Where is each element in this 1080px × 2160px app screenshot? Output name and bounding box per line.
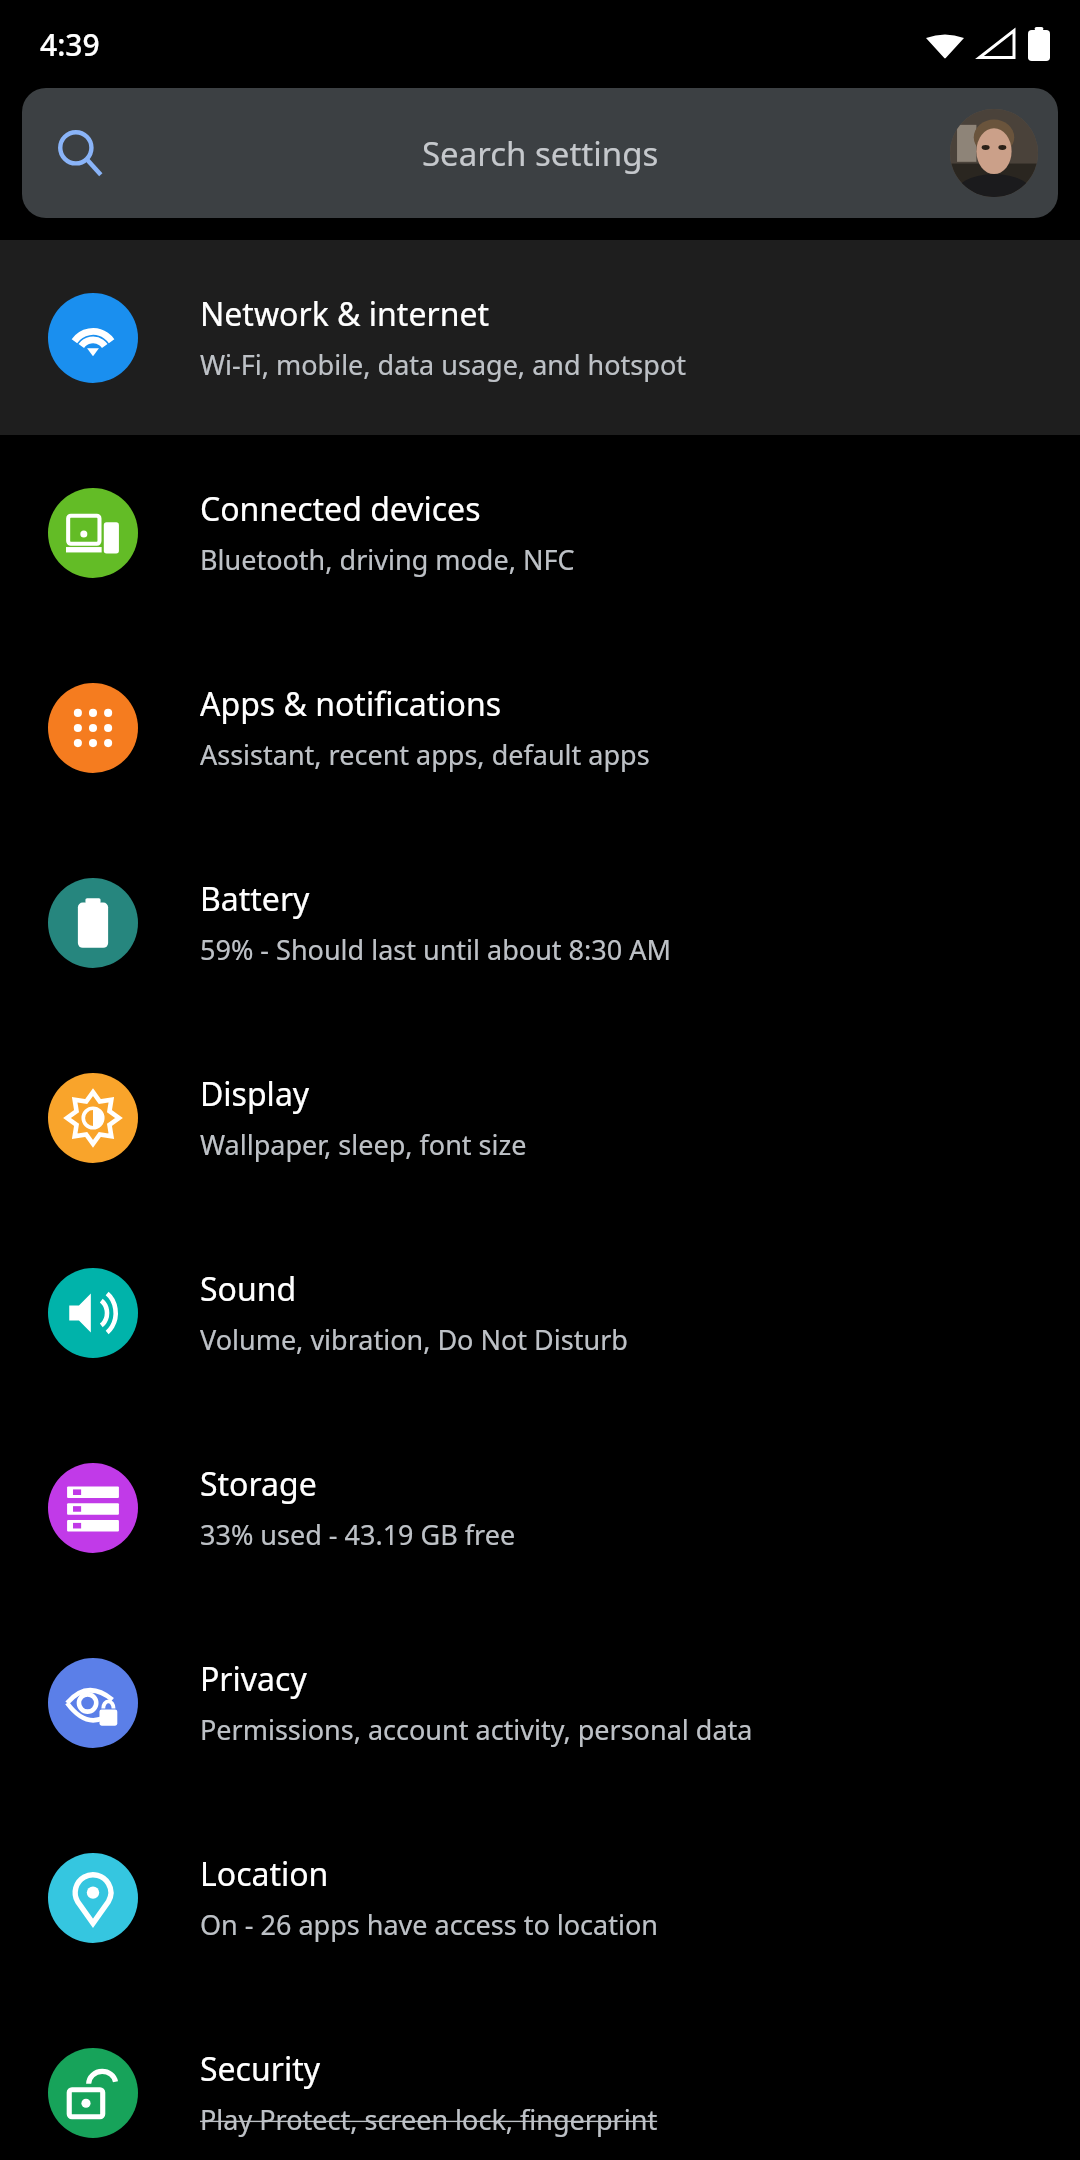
staticText: Volume, vibration, Do Not Disturb bbox=[200, 1321, 628, 1358]
staticText: Sound bbox=[200, 1267, 297, 1311]
staticText: Apps & notifications bbox=[200, 682, 501, 726]
staticText: Network & internet bbox=[200, 292, 490, 336]
staticText: 33% used - 43.19 GB free bbox=[200, 1516, 516, 1553]
button[interactable]: Display bbox=[0, 1020, 1080, 1215]
staticText: Security bbox=[200, 2047, 321, 2091]
staticText: Bluetooth, driving mode, NFC bbox=[200, 541, 575, 578]
staticText: Storage bbox=[200, 1462, 317, 1506]
button[interactable]: Sound bbox=[0, 1215, 1080, 1410]
button[interactable]: Security bbox=[0, 1995, 1080, 2160]
staticText: Connected devices bbox=[200, 487, 481, 531]
staticText: Display bbox=[200, 1072, 310, 1116]
staticText: Privacy bbox=[200, 1657, 307, 1701]
button[interactable]: Search bbox=[22, 88, 1058, 218]
button[interactable]: Storage bbox=[0, 1410, 1080, 1605]
staticText: Location bbox=[200, 1852, 329, 1896]
staticText: Battery bbox=[200, 877, 310, 921]
button[interactable]: Battery bbox=[0, 825, 1080, 1020]
staticText: Wi-Fi, mobile, data usage, and hotspot bbox=[200, 346, 686, 383]
staticText: 4:39 bbox=[40, 24, 100, 65]
button[interactable]: Privacy bbox=[0, 1605, 1080, 1800]
staticText: 59% - Should last until about 8:30 AM bbox=[200, 931, 671, 968]
staticText: Play Protect, screen lock, fingerprint bbox=[200, 2101, 658, 2138]
staticText: Search settings bbox=[422, 131, 659, 176]
staticText: Assistant, recent apps, default apps bbox=[200, 736, 650, 773]
staticText: Wallpaper, sleep, font size bbox=[200, 1126, 527, 1163]
staticText: Permissions, account activity, personal … bbox=[200, 1711, 753, 1748]
staticText: On - 26 apps have access to location bbox=[200, 1906, 658, 1943]
button[interactable]: Account bbox=[950, 109, 1038, 197]
button[interactable]: Connected devices bbox=[0, 435, 1080, 630]
button[interactable]: Network & internet bbox=[0, 240, 1080, 435]
button[interactable]: Apps & notifications bbox=[0, 630, 1080, 825]
button[interactable]: Location bbox=[0, 1800, 1080, 1995]
other: Search bbox=[54, 127, 106, 179]
